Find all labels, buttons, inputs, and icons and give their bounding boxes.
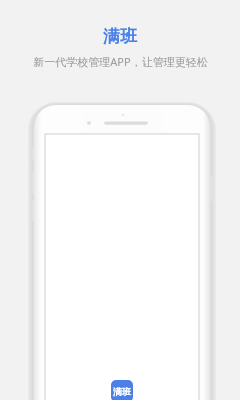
button[interactable]: 满班 app icon	[111, 380, 133, 400]
staticText: 满班	[103, 26, 137, 47]
button[interactable]: 满班 app icon	[34, 105, 210, 400]
staticText: 满班	[113, 386, 131, 397]
staticText: 新一代学校管理APP，让管理更轻松	[33, 54, 208, 69]
